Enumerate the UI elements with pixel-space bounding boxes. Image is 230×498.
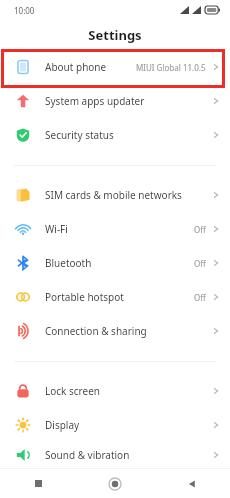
button[interactable]: Home xyxy=(76,469,153,498)
button[interactable]: Portable hotspot xyxy=(0,280,230,314)
staticText: 10:00 xyxy=(14,5,35,16)
staticText: Wi-Fi xyxy=(45,222,194,236)
button[interactable]: Recent apps xyxy=(0,469,76,498)
button[interactable]: Wi-Fi xyxy=(0,212,230,246)
staticText: About phone xyxy=(45,60,136,74)
button[interactable]: Connection & sharing xyxy=(0,314,230,348)
staticText: Security status xyxy=(45,128,212,142)
staticText: Sound & vibration xyxy=(45,448,212,462)
button[interactable]: About phone xyxy=(0,50,230,84)
staticText: Off xyxy=(194,258,206,269)
staticText: SIM cards & mobile networks xyxy=(45,188,212,202)
staticText: Portable hotspot xyxy=(45,290,194,304)
staticText: Display xyxy=(45,418,212,432)
staticText: MIUI Global 11.0.5 xyxy=(136,62,206,73)
staticText: Off xyxy=(194,292,206,303)
button[interactable]: Display xyxy=(0,408,230,442)
button[interactable]: SIM cards & mobile networks xyxy=(0,178,230,212)
button[interactable]: Sound & vibration xyxy=(0,442,230,468)
button[interactable]: Security status xyxy=(0,118,230,152)
button[interactable]: System apps updater xyxy=(0,84,230,118)
button[interactable]: Lock screen xyxy=(0,374,230,408)
staticText: Lock screen xyxy=(45,384,212,398)
staticText: Connection & sharing xyxy=(45,324,212,338)
button[interactable]: Back xyxy=(153,469,230,498)
staticText: Off xyxy=(194,224,206,235)
staticText: Settings xyxy=(88,26,142,44)
staticText: Bluetooth xyxy=(45,256,194,270)
staticText: System apps updater xyxy=(45,94,212,108)
button[interactable]: Bluetooth xyxy=(0,246,230,280)
